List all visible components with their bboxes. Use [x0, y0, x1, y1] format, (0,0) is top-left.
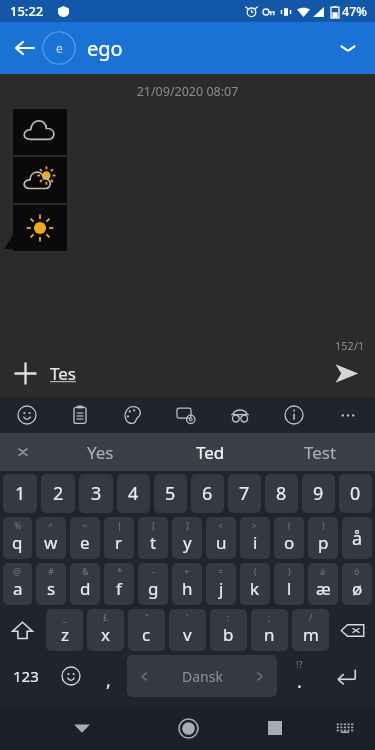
button[interactable]: Expand — [327, 27, 369, 69]
button[interactable]: < — [206, 517, 236, 559]
button[interactable]: !? — [279, 654, 319, 698]
button[interactable]: 8 — [265, 474, 298, 513]
button[interactable]: ^ — [36, 517, 66, 559]
staticText: f — [116, 577, 122, 600]
button[interactable] — [13, 109, 67, 251]
button[interactable]: ä — [308, 563, 338, 605]
button[interactable]: Emoji — [0, 397, 53, 433]
button[interactable]: , — [91, 654, 125, 698]
button[interactable]: ) — [308, 517, 338, 559]
button[interactable]: 9 — [302, 474, 335, 513]
staticText: = — [218, 565, 224, 577]
staticText: 7 — [239, 481, 250, 506]
button[interactable]: Dansk — [127, 655, 277, 697]
button[interactable]: " — [128, 609, 165, 651]
button[interactable]: - — [138, 563, 168, 605]
staticText: " — [145, 611, 149, 623]
button[interactable]: More options — [321, 397, 375, 433]
button[interactable]: 123 — [1, 654, 51, 698]
button[interactable]: 7 — [228, 474, 261, 513]
button[interactable]: Switch keyboard — [325, 708, 365, 748]
button[interactable]: 2 — [41, 474, 75, 513]
staticText: ~ — [82, 519, 88, 531]
button[interactable]: _ — [46, 609, 83, 651]
button[interactable]: Ted — [155, 433, 265, 471]
button[interactable]: & — [70, 563, 100, 605]
button[interactable]: @ — [3, 563, 32, 605]
button[interactable]: Back — [4, 27, 46, 69]
button[interactable]: : — [210, 609, 247, 651]
staticText: ; — [268, 611, 271, 623]
button[interactable]: * — [104, 563, 134, 605]
button[interactable]: | — [104, 517, 134, 559]
button[interactable]: Theme — [106, 397, 159, 433]
staticText: o — [284, 531, 295, 554]
button[interactable]: £ — [87, 609, 124, 651]
staticText: y — [183, 531, 192, 554]
button[interactable]: Stickers — [159, 397, 213, 433]
button[interactable]: 4 — [117, 474, 150, 513]
button[interactable]: Clipboard — [53, 397, 106, 433]
button[interactable]: Shift — [1, 608, 44, 652]
button[interactable]: ~ — [70, 517, 100, 559]
button[interactable]: ö — [342, 563, 372, 605]
button[interactable]: ' — [169, 609, 206, 651]
button[interactable]: Tes — [50, 356, 300, 390]
button[interactable]: å — [342, 517, 372, 559]
staticText: n — [264, 623, 275, 646]
button[interactable]: 3 — [79, 474, 113, 513]
button[interactable]: ] — [172, 517, 202, 559]
button[interactable]: [ — [138, 517, 168, 559]
button[interactable]: 0 — [339, 474, 372, 513]
button[interactable]: Send — [323, 350, 369, 396]
staticText: 15:22 — [10, 2, 44, 20]
staticText: l — [287, 577, 292, 600]
staticText: d — [80, 577, 91, 600]
staticText: 1 — [15, 481, 26, 506]
staticText: % — [14, 519, 22, 531]
button[interactable]: 1 — [3, 474, 37, 513]
button[interactable]: ; — [251, 609, 288, 651]
staticText: ö — [354, 565, 360, 577]
staticText: ' — [186, 611, 189, 623]
staticText: !? — [296, 658, 303, 670]
staticText: u — [216, 531, 227, 554]
button[interactable]: > — [240, 517, 270, 559]
staticText: r — [115, 531, 123, 554]
staticText: ego — [87, 35, 123, 62]
button[interactable]: = — [206, 563, 236, 605]
button[interactable]: Add attachment — [2, 350, 48, 396]
staticText: å — [352, 526, 363, 551]
staticText: Test — [304, 441, 337, 464]
button[interactable]: Back — [60, 706, 104, 750]
button[interactable]: 5 — [154, 474, 187, 513]
staticText: Ted — [196, 441, 225, 464]
button[interactable]: Home — [166, 706, 210, 750]
button[interactable]: ( — [274, 517, 304, 559]
button[interactable]: + — [172, 563, 202, 605]
button[interactable]: ( — [240, 563, 270, 605]
button[interactable]: ) — [274, 563, 304, 605]
button[interactable]: Backspace — [331, 608, 374, 652]
button[interactable]: Recents — [253, 706, 297, 750]
button[interactable]: Expand suggestions — [0, 433, 46, 471]
button[interactable]: 6 — [191, 474, 224, 513]
button[interactable]: Emoji — [51, 654, 91, 698]
staticText: k — [250, 577, 260, 600]
staticText: # — [48, 565, 54, 577]
staticText: 3 — [91, 481, 102, 506]
button[interactable]: e — [42, 31, 76, 65]
button[interactable]: Enter — [319, 654, 374, 698]
staticText: Dansk — [182, 667, 223, 686]
button[interactable]: / — [292, 609, 329, 651]
staticText: * — [117, 565, 122, 577]
button[interactable]: Incognito — [213, 397, 267, 433]
button[interactable]: # — [36, 563, 66, 605]
staticText: 9 — [313, 481, 324, 506]
button[interactable]: % — [3, 517, 32, 559]
button[interactable]: Yes — [46, 433, 155, 471]
staticText: 21/09/2020 08:07 — [0, 83, 375, 100]
button[interactable]: Test — [265, 433, 375, 471]
staticText: [ — [152, 519, 155, 531]
button[interactable]: Info — [267, 397, 321, 433]
